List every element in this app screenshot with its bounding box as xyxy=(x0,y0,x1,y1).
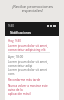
staticText: Lorem ipsum dolor sit amet, consectetur … xyxy=(8,44,50,52)
staticText: Lorem ipsum dolor sit amet, consectetur … xyxy=(8,60,50,68)
staticText: ¡Recibe promociones especiales! xyxy=(12,4,53,14)
staticText: 9:30 xyxy=(8,24,14,28)
staticText: Ayer, 18:00 xyxy=(8,55,28,59)
staticText: Recordarme más tarde xyxy=(8,78,50,82)
button[interactable]: Notificaciones xyxy=(5,29,59,36)
staticText: Hoy, 9:30 xyxy=(8,39,28,43)
staticText: Notificaciones xyxy=(10,31,32,35)
staticText: Lorem ipsum dolor sit amet cons xyxy=(8,68,50,76)
staticText: aplicación móvil xyxy=(8,92,50,96)
staticText: Nunca volver a mostrar este aviso de la xyxy=(8,84,50,92)
